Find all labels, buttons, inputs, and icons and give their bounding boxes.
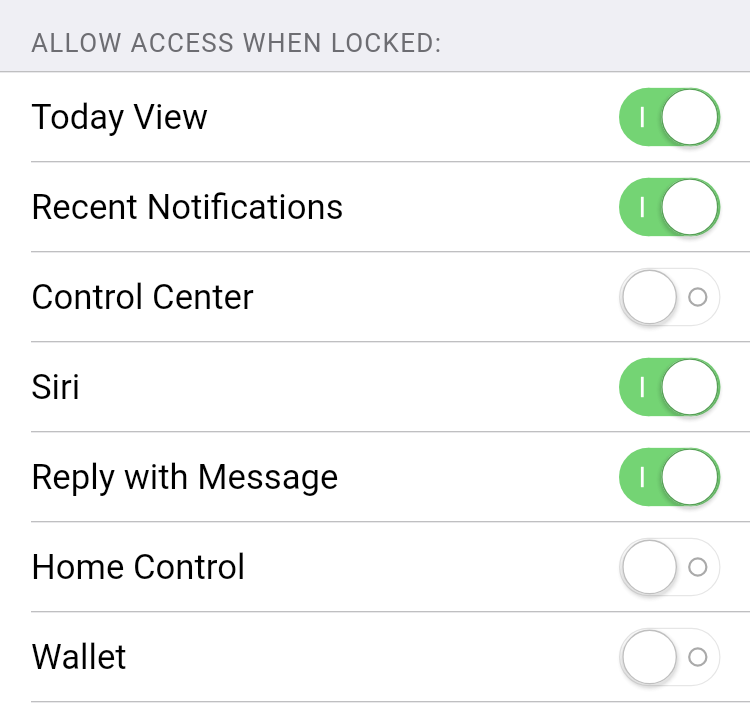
button[interactable]: Recent Notifications [0, 163, 750, 251]
button[interactable]: Control Center [0, 253, 750, 341]
staticText: Wallet [31, 637, 127, 678]
button[interactable]: Toggle off [619, 532, 721, 602]
button[interactable]: Toggle on [619, 82, 721, 152]
button[interactable]: Today View [0, 73, 750, 161]
staticText: Recent Notifications [31, 187, 344, 228]
button[interactable]: Reply with Message [0, 433, 750, 521]
button[interactable]: Toggle off [619, 262, 721, 332]
staticText: Home Control [31, 547, 246, 588]
staticText: Today View [31, 97, 208, 138]
staticText: Reply with Message [31, 457, 339, 498]
staticText: Siri [31, 367, 81, 408]
button[interactable]: Toggle off [619, 622, 721, 692]
button[interactable]: Toggle on [619, 442, 721, 512]
button[interactable]: Siri [0, 343, 750, 431]
button[interactable]: Wallet [0, 613, 750, 701]
staticText: Control Center [31, 277, 254, 318]
button[interactable]: Toggle on [619, 172, 721, 242]
staticText: ALLOW ACCESS WHEN LOCKED: [31, 28, 443, 58]
button[interactable]: Toggle on [619, 352, 721, 422]
button[interactable]: Home Control [0, 523, 750, 611]
